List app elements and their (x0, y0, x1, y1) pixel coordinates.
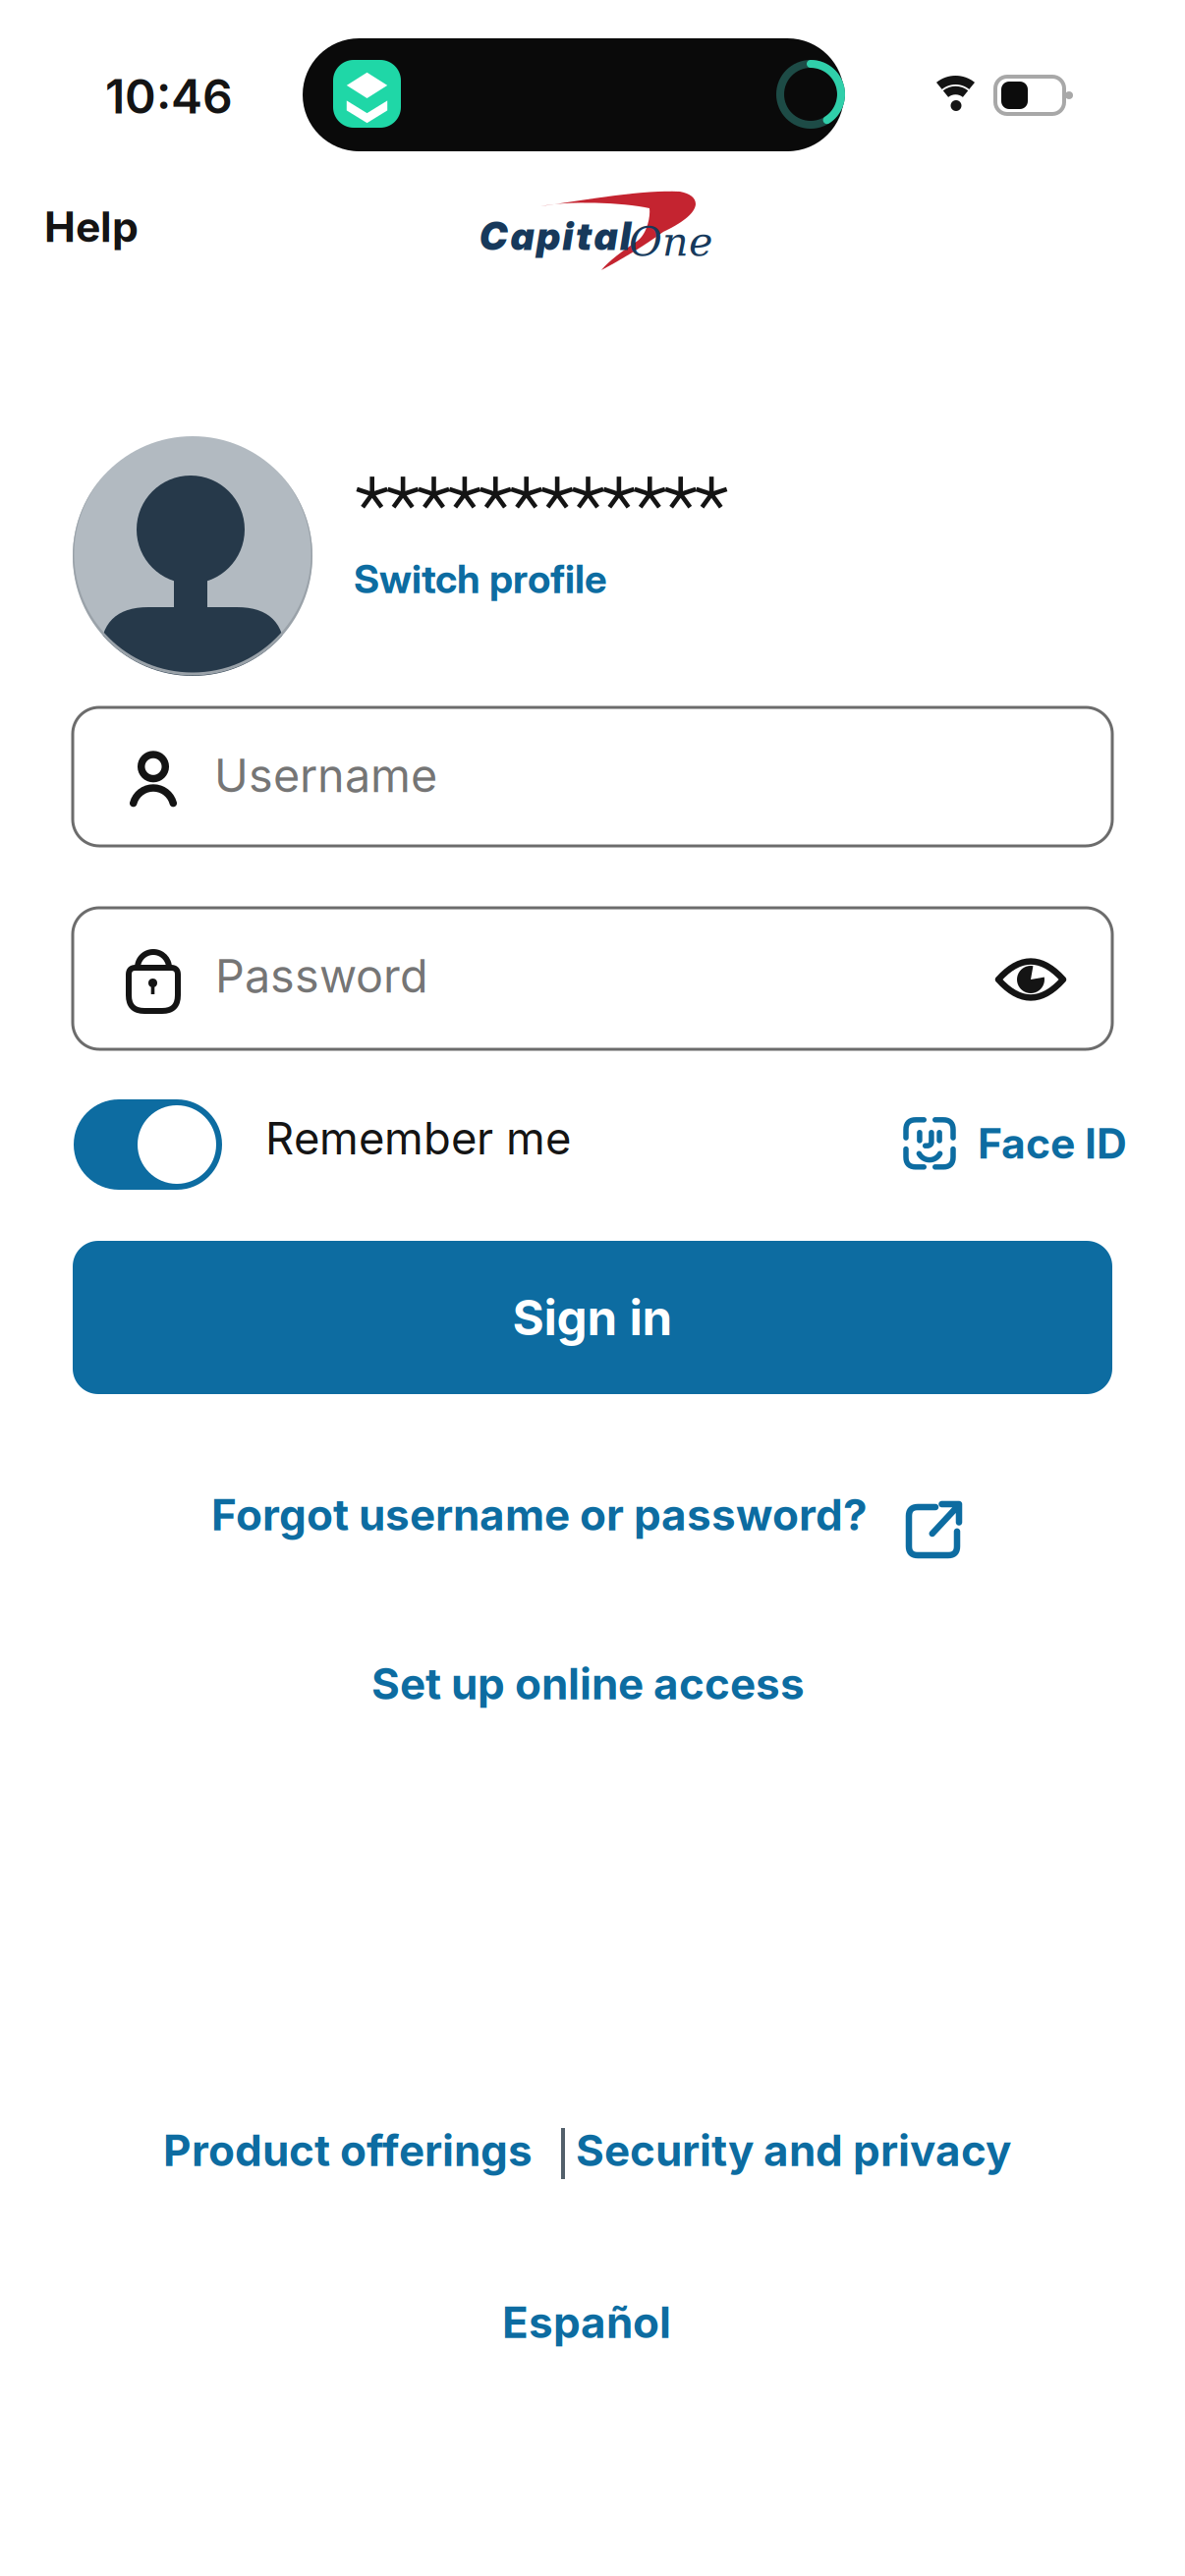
button[interactable]: Help (44, 201, 139, 252)
staticText: Sign in (512, 1288, 673, 1347)
button[interactable]: Show password (994, 950, 1067, 1009)
staticText: Face ID (978, 1118, 1127, 1169)
button[interactable]: Remember me (74, 1099, 222, 1190)
staticText: Security and privacy (576, 2124, 1011, 2176)
staticText: Remember me (265, 1111, 571, 1165)
button[interactable]: Security and privacy (576, 2124, 1011, 2176)
button[interactable]: Switch profile (354, 555, 607, 603)
button[interactable]: Español (502, 2296, 671, 2348)
button[interactable]: Forgot username or password? (211, 1488, 964, 1557)
button[interactable]: Sign in with Face ID (906, 1118, 1127, 1169)
button[interactable]: Set up online access (371, 1657, 805, 1710)
staticText: Help (44, 201, 139, 252)
staticText: Capital (480, 213, 631, 259)
staticText: Set up online access (371, 1657, 805, 1710)
staticText: Password (215, 948, 428, 1004)
staticText: Switch profile (354, 555, 607, 603)
staticText: 10:46 (105, 68, 233, 125)
staticText: Forgot username or password? (211, 1488, 868, 1541)
staticText: Product offerings (163, 2124, 533, 2176)
staticText: Username (214, 748, 437, 803)
button[interactable]: Capital One (480, 185, 715, 278)
button[interactable]: Sign in (73, 1241, 1112, 1394)
staticText: One (629, 218, 712, 265)
staticText: Español (502, 2296, 671, 2348)
button[interactable]: Product offerings (163, 2124, 533, 2176)
